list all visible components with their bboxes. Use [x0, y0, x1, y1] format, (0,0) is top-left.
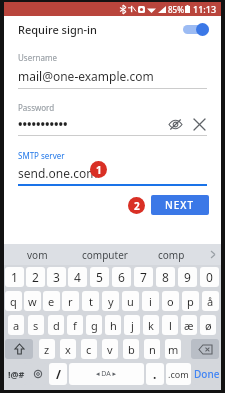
button[interactable]: o [162, 291, 179, 311]
staticText: d [53, 318, 60, 333]
button[interactable]: u [122, 291, 139, 311]
staticText: s [33, 318, 39, 333]
button[interactable]: !@# [5, 363, 27, 385]
staticText: n [149, 342, 156, 357]
staticText: Require sign-in [18, 22, 97, 37]
staticText: m [168, 342, 179, 357]
staticText: .com [168, 368, 189, 380]
button[interactable]: f [67, 315, 83, 335]
button[interactable]: q [5, 291, 22, 311]
button[interactable]: 3 [47, 267, 66, 287]
staticText: NEXT [165, 198, 195, 212]
button[interactable]: ø [200, 315, 216, 335]
button[interactable]: Require sign-in [4, 16, 221, 42]
staticText: Done [194, 367, 220, 381]
staticText: !@# [8, 368, 25, 380]
button[interactable]: e [43, 291, 60, 311]
staticText: 2 [32, 269, 39, 285]
staticText: Password [18, 102, 55, 113]
staticText: mail@one-example.com [18, 68, 154, 84]
button[interactable]: æ [181, 315, 197, 335]
button[interactable]: w [24, 291, 41, 311]
button[interactable]: h [105, 315, 121, 335]
staticText: k [148, 318, 154, 333]
button[interactable]: z [39, 339, 55, 359]
staticText: vom [27, 248, 48, 262]
staticText: 1 [11, 269, 18, 285]
button[interactable]: b [123, 339, 139, 359]
staticText: Username [18, 52, 57, 63]
staticText: t [89, 294, 93, 309]
staticText: e [48, 294, 55, 309]
staticText: 9 [184, 269, 191, 285]
button[interactable]: d [48, 315, 64, 335]
staticText: SMTP server [18, 150, 65, 161]
staticText: f [73, 318, 77, 333]
button[interactable]: 4 [68, 267, 87, 287]
button[interactable]: 9 [178, 267, 197, 287]
button[interactable]: Done [193, 363, 220, 385]
button[interactable]: c [81, 339, 97, 359]
button[interactable]: y [102, 291, 119, 311]
button[interactable]: 0 [200, 267, 219, 287]
button[interactable]: 7 [134, 267, 153, 287]
staticText: a [13, 318, 20, 333]
staticText: r [68, 294, 73, 309]
staticText: b [128, 342, 135, 357]
button[interactable]: Settings [29, 363, 47, 385]
staticText: 1 [96, 163, 102, 177]
button[interactable]: ◂ DA ▸ [69, 363, 144, 385]
staticText: / [56, 366, 61, 382]
staticText: u [127, 294, 134, 309]
button[interactable]: Show password [167, 116, 183, 132]
button[interactable]: a [8, 315, 24, 335]
button[interactable]: å [202, 291, 219, 311]
staticText: v [107, 342, 113, 357]
button[interactable]: 6 [112, 267, 131, 287]
button[interactable]: .com [166, 363, 191, 385]
button[interactable]: comp [138, 244, 205, 265]
staticText: å [207, 294, 214, 309]
staticText: 11:13 [193, 3, 217, 15]
button[interactable]: m [165, 339, 181, 359]
button[interactable]: / [49, 363, 67, 385]
button[interactable]: n [144, 339, 160, 359]
staticText: p [187, 294, 194, 309]
button[interactable]: More suggestions [205, 244, 221, 265]
staticText: y [108, 294, 114, 309]
button[interactable]: v [102, 339, 118, 359]
button[interactable]: vom [4, 244, 71, 265]
staticText: ø [205, 318, 212, 333]
button[interactable]: p [182, 291, 199, 311]
staticText: j [131, 318, 134, 333]
button[interactable]: j [124, 315, 140, 335]
staticText: æ [184, 318, 194, 333]
button[interactable]: . [146, 363, 164, 385]
button[interactable]: Clear [191, 116, 207, 132]
button[interactable]: i [142, 291, 159, 311]
button[interactable]: 2 [26, 267, 45, 287]
staticText: z [44, 342, 50, 357]
button[interactable]: 5 [90, 267, 109, 287]
button[interactable]: Shift [5, 339, 33, 359]
staticText: 2 [134, 199, 140, 213]
button[interactable]: r [62, 291, 79, 311]
button[interactable]: k [143, 315, 159, 335]
button[interactable]: 1 [5, 267, 24, 287]
staticText: h [110, 318, 117, 333]
button[interactable]: g [86, 315, 102, 335]
staticText: 4 [74, 269, 81, 285]
button[interactable]: 8 [156, 267, 175, 287]
staticText: 5 [96, 269, 103, 285]
button[interactable]: t [82, 291, 99, 311]
staticText: l [169, 318, 172, 333]
staticText: computer [82, 248, 128, 262]
button[interactable]: NEXT [151, 195, 209, 215]
button[interactable]: computer [71, 244, 138, 265]
staticText: i [149, 294, 152, 309]
button[interactable]: s [28, 315, 44, 335]
button[interactable]: x [60, 339, 76, 359]
button[interactable]: Backspace [191, 339, 219, 359]
button[interactable]: l [162, 315, 178, 335]
staticText: 3 [53, 269, 60, 285]
